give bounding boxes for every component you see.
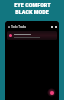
staticText: BLACK MODE bbox=[15, 8, 49, 15]
staticText: Todo Tasks bbox=[11, 25, 27, 29]
button[interactable] bbox=[7, 31, 57, 40]
staticText: EYE COMFORT bbox=[14, 1, 51, 8]
button[interactable]: Add task bbox=[50, 91, 54, 95]
button[interactable]: Menu bbox=[8, 26, 10, 28]
